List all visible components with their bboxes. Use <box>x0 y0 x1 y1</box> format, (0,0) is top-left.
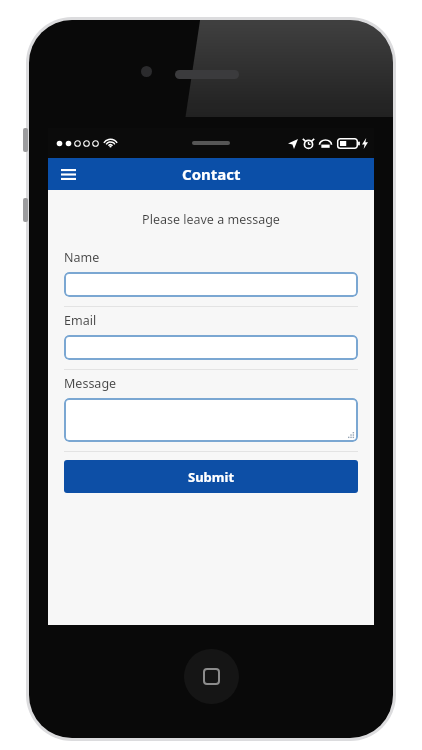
staticText: Please leave a message <box>48 211 374 228</box>
button[interactable]: Submit <box>64 460 358 493</box>
staticText: Contact <box>182 164 241 184</box>
staticText: Message <box>64 375 117 392</box>
button[interactable]: Email input field <box>64 335 358 360</box>
staticText: Email <box>64 312 97 329</box>
button[interactable]: Open navigation menu <box>48 158 88 190</box>
staticText: Name <box>64 249 100 266</box>
button[interactable]: Name input field <box>64 272 358 297</box>
button[interactable]: Message input field <box>64 398 358 442</box>
staticText: Submit <box>188 468 235 486</box>
